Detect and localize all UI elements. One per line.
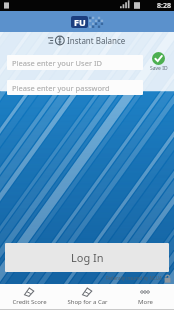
button[interactable]: Log In [5,243,169,272]
staticText: More [138,298,153,306]
button[interactable]: Save ID [146,52,171,72]
staticText: FU [74,16,86,28]
button[interactable]: Credit Score [0,284,58,309]
staticText: 8:28 [157,1,171,11]
button[interactable]: Shop for a Car [58,284,116,309]
staticText: Please enter your password [12,83,110,93]
staticText: Save ID [150,65,168,72]
button[interactable]: More [116,284,174,309]
staticText: Credit Score [12,298,47,306]
staticText: Instant Balance [67,35,126,46]
button[interactable]: Instant Balance [0,32,174,49]
button[interactable]: Please enter your password [7,80,143,95]
staticText: Federally insured by NCUA [106,275,162,281]
staticText: Log In [71,250,104,265]
button[interactable]: Please enter your User ID [7,55,143,70]
staticText: Shop for a Car [67,298,108,306]
staticText: Please enter your User ID [12,58,102,68]
